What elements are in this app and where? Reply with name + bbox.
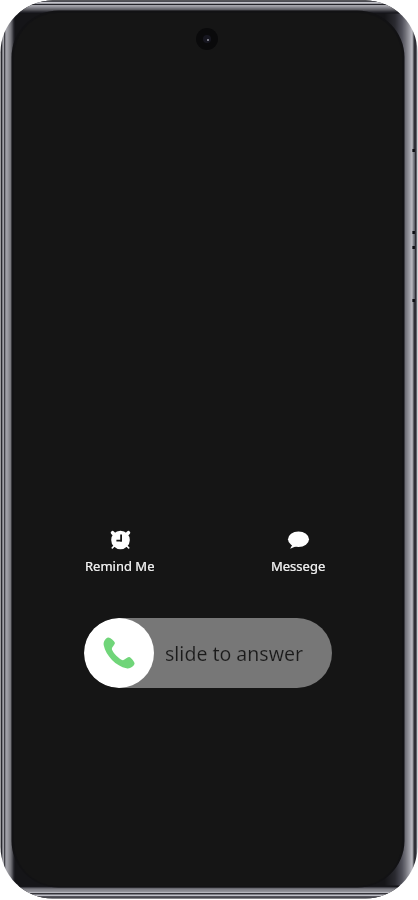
button[interactable]: Message: [255, 525, 341, 578]
staticText: slide to answer: [165, 640, 304, 667]
staticText: Messege: [271, 557, 326, 575]
button[interactable]: slide to answer: [84, 618, 332, 688]
staticText: Remind Me: [85, 557, 155, 575]
other: Message: [288, 528, 309, 549]
other: Remind Me: [110, 528, 131, 549]
button[interactable]: Remind Me: [77, 525, 163, 578]
